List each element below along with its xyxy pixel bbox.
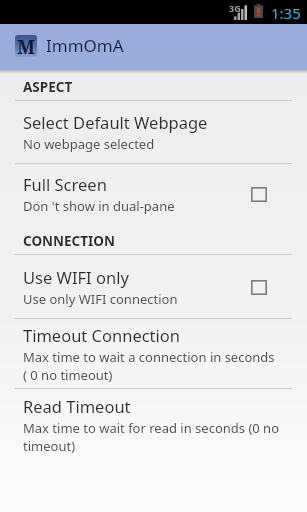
button[interactable]: Toggle Full Screen <box>235 173 283 215</box>
staticText: 1:35 <box>271 3 301 23</box>
staticText: M <box>17 35 36 56</box>
button[interactable]: Toggle Use WIFI only <box>235 266 283 308</box>
staticText: Timeout Connection <box>23 324 181 346</box>
staticText: Select Default Webpage <box>23 111 208 133</box>
staticText: CONNECTION <box>23 232 115 250</box>
staticText: Full Screen <box>23 173 107 195</box>
button[interactable]: Read Timeout <box>0 395 307 455</box>
button[interactable]: Select Default Webpage <box>0 111 307 153</box>
staticText: Max time to wait a connection in seconds… <box>23 348 275 384</box>
staticText: Don 't show in dual-pane <box>23 197 175 215</box>
button[interactable]: Use WIFI only <box>0 266 307 308</box>
staticText: ASPECT <box>23 78 73 96</box>
staticText: 3G <box>229 2 241 14</box>
staticText: ImmOmA <box>46 34 124 57</box>
staticText: Use WIFI only <box>23 266 129 288</box>
staticText: Read Timeout <box>23 395 131 417</box>
staticText: No webpage selected <box>23 135 155 153</box>
staticText: Max time to wait for read in seconds (0 … <box>23 419 284 455</box>
staticText: Use only WIFI connection <box>23 290 178 308</box>
button[interactable]: Full Screen <box>0 173 307 215</box>
button[interactable]: Timeout Connection <box>0 324 307 384</box>
